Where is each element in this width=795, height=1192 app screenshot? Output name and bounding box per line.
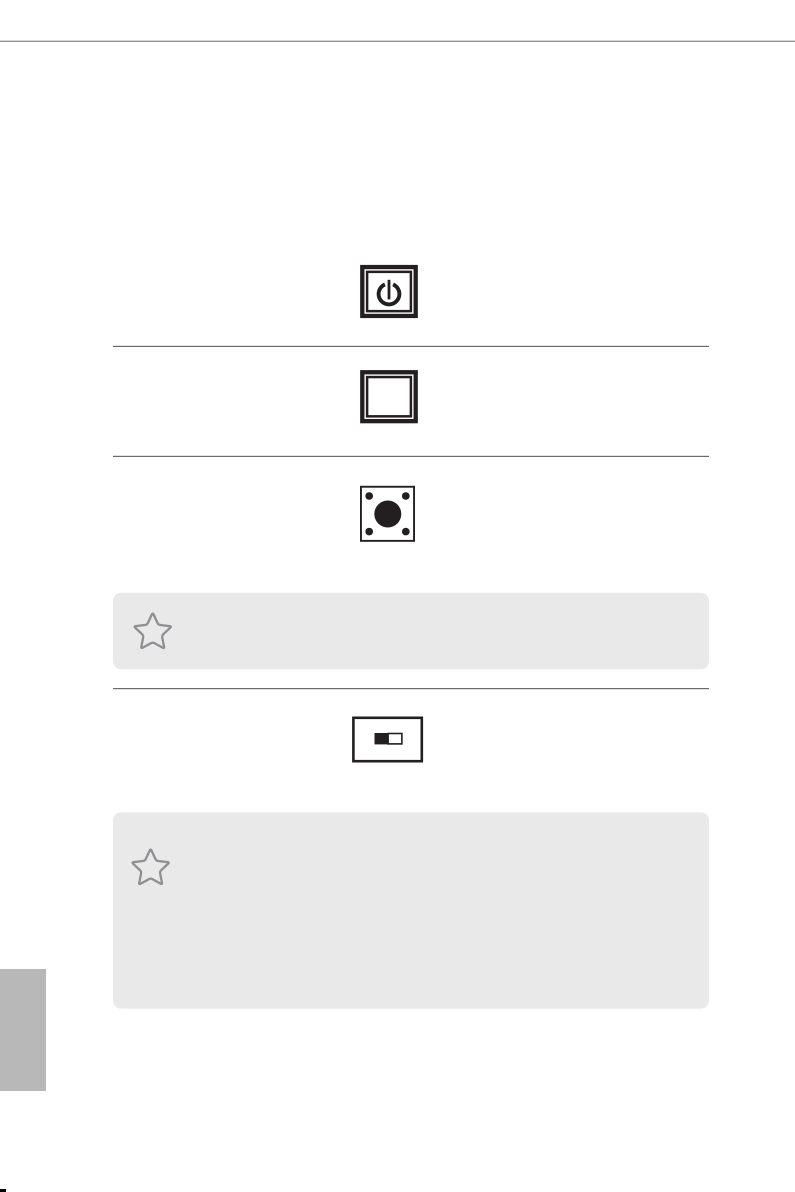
button[interactable]: Screen [113, 358, 709, 436]
button[interactable]: Power [113, 252, 709, 330]
button[interactable]: Sensor [113, 475, 709, 553]
button[interactable]: Toggle [113, 704, 709, 774]
